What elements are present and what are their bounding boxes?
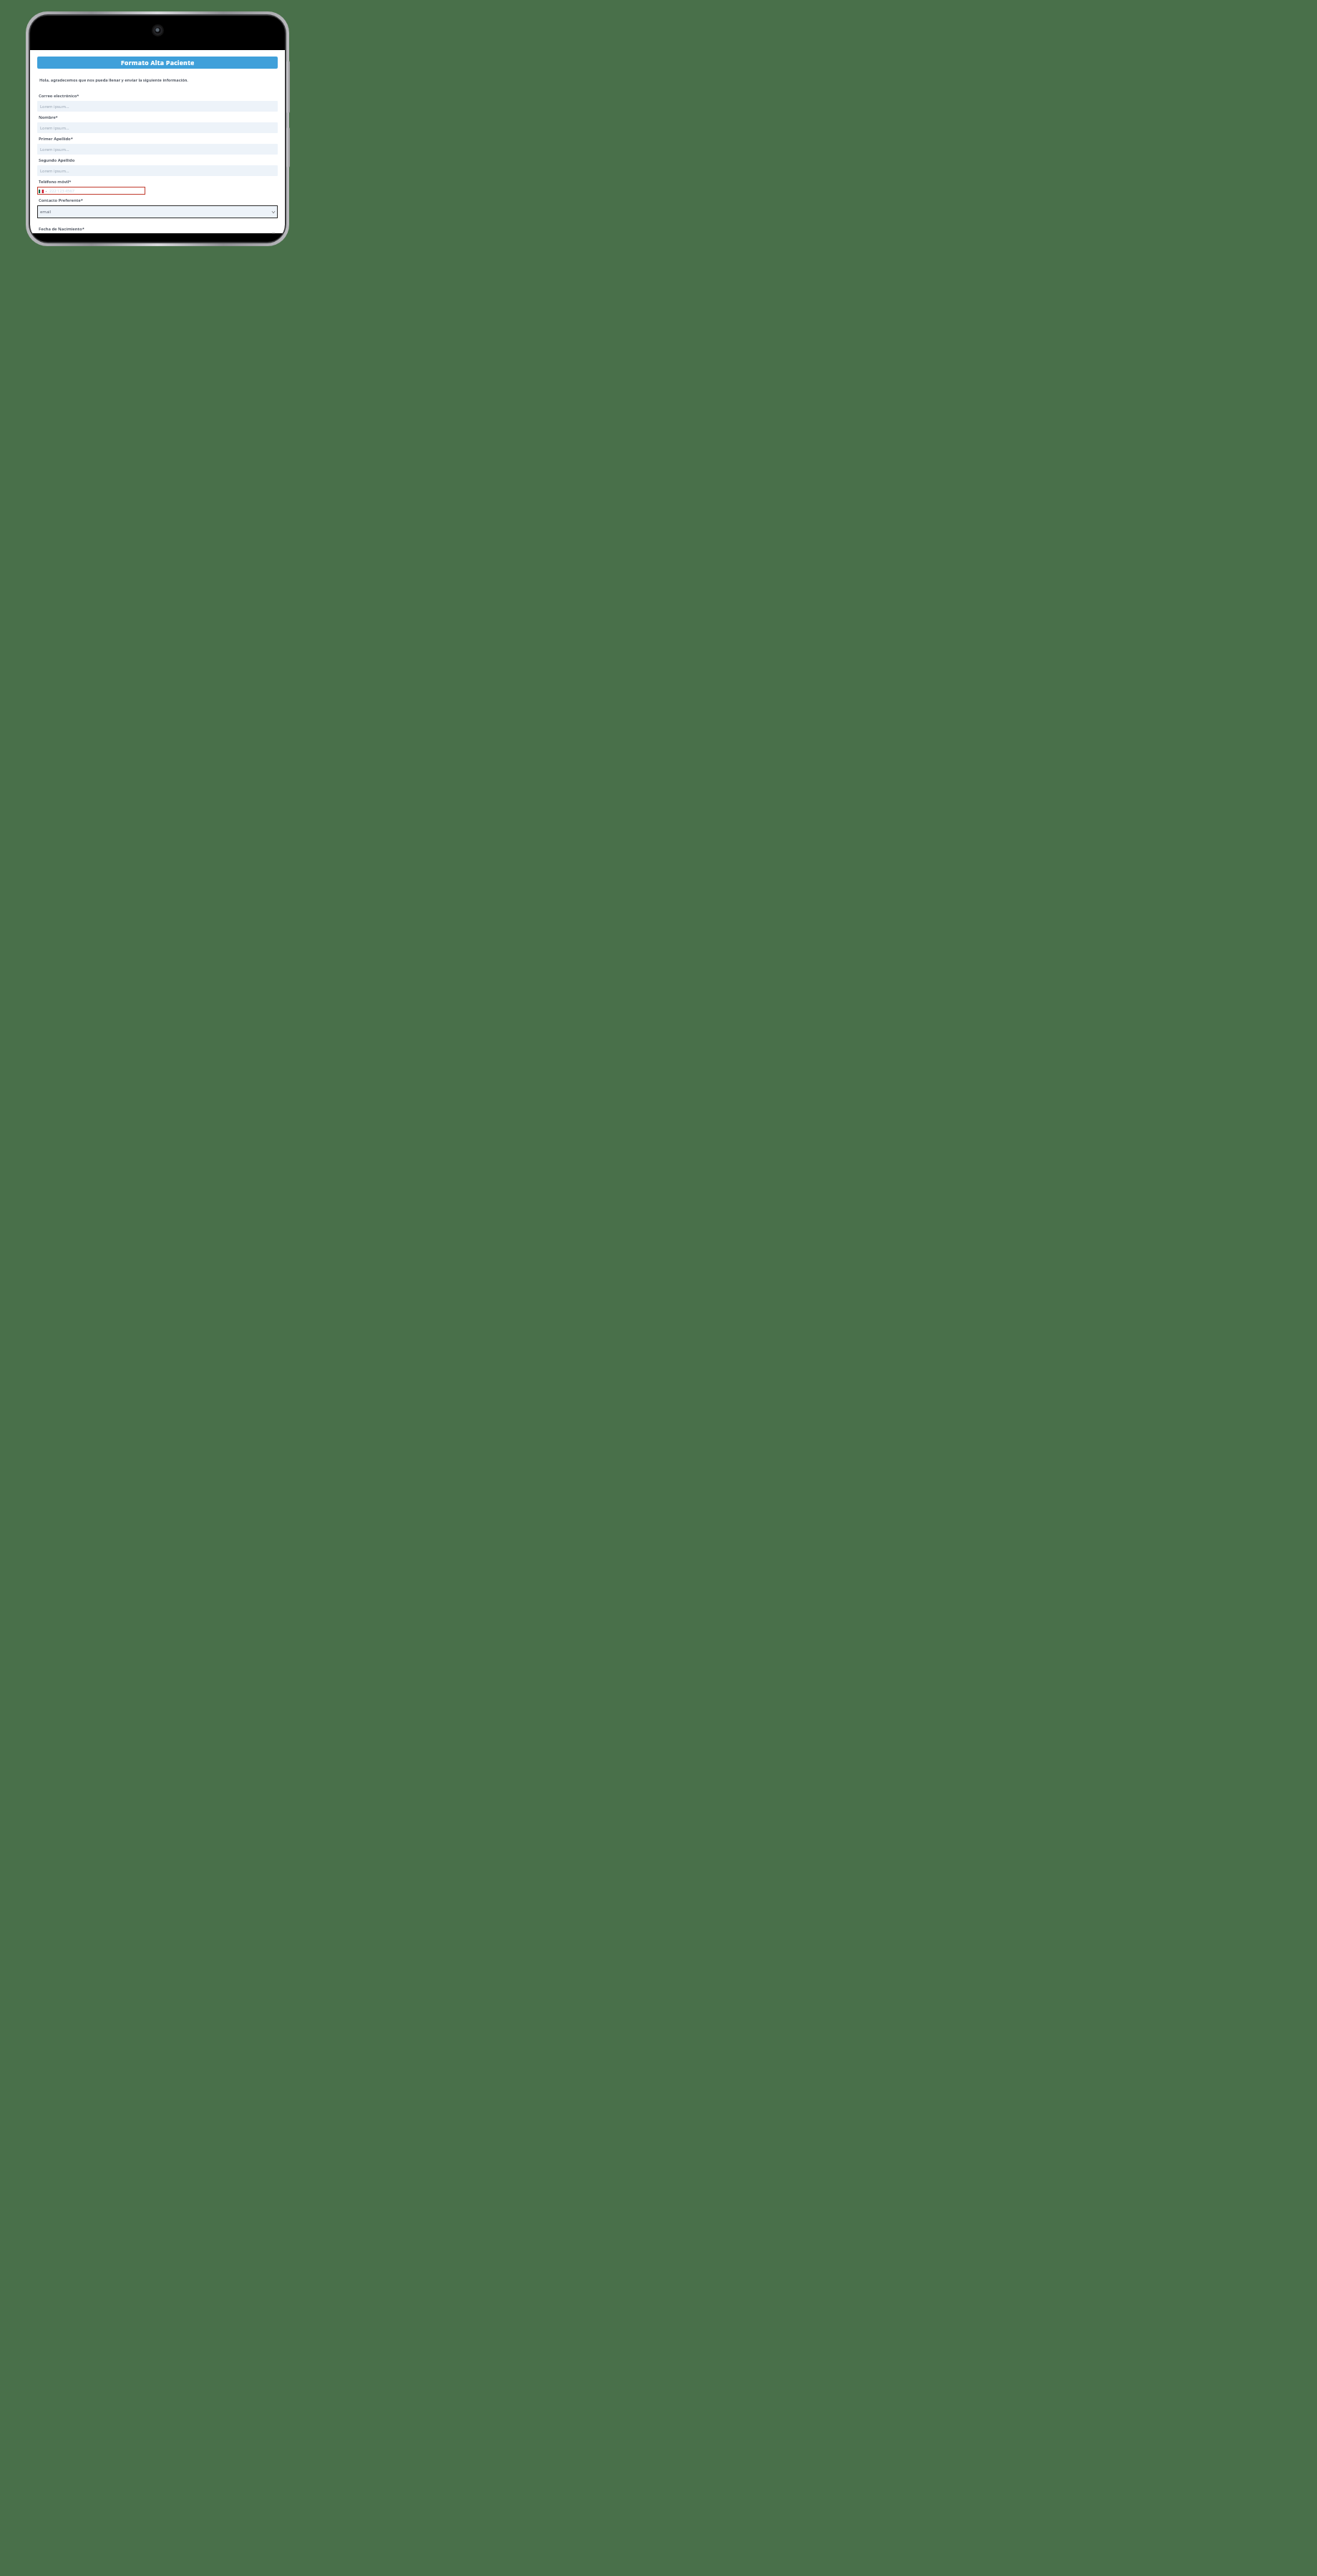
other: Volume bbox=[286, 61, 290, 113]
button[interactable]: Formato Alta Paciente bbox=[37, 57, 278, 69]
staticText: Contacto Preferente* bbox=[39, 197, 83, 203]
staticText: Lorem ipsum... bbox=[40, 147, 69, 152]
staticText: Primer Apellido* bbox=[39, 136, 73, 142]
staticText: Correo electrónico* bbox=[39, 93, 79, 99]
button[interactable]: Lorem ipsum... bbox=[37, 122, 278, 133]
button[interactable]: email bbox=[37, 205, 278, 218]
staticText: Lorem ipsum... bbox=[40, 104, 69, 109]
button[interactable]: 222 123 4567 bbox=[37, 187, 145, 195]
staticText: Teléfono móvil* bbox=[39, 179, 72, 185]
staticText: 222 123 4567 bbox=[49, 188, 74, 194]
button[interactable]: Lorem ipsum... bbox=[37, 101, 278, 112]
staticText: Nombre* bbox=[39, 114, 58, 120]
staticText: Formato Alta Paciente bbox=[121, 59, 195, 67]
staticText: Fecha de Nacimiento* bbox=[39, 226, 84, 231]
staticText: Lorem ipsum... bbox=[40, 168, 69, 174]
staticText: Lorem ipsum... bbox=[40, 125, 69, 131]
staticText: email bbox=[40, 209, 51, 215]
staticText: Segundo Apellido bbox=[39, 157, 75, 163]
staticText: Hola, agradecemos que nos pueda llenar y… bbox=[39, 77, 188, 83]
other: Power bbox=[286, 127, 290, 167]
button[interactable]: Lorem ipsum... bbox=[37, 144, 278, 155]
button[interactable]: Lorem ipsum... bbox=[37, 165, 278, 176]
